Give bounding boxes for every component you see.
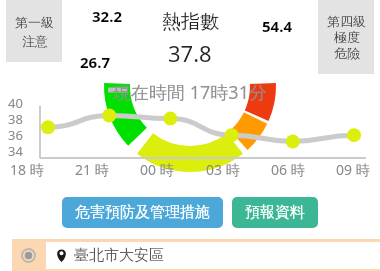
staticText: 第一級 xyxy=(15,14,54,30)
staticText: 26.7 xyxy=(80,52,110,72)
staticText: 00 時 xyxy=(140,160,174,179)
button[interactable]: 危害預防及管理措施 xyxy=(62,197,223,228)
staticText: 54.4 xyxy=(262,16,292,36)
staticText: 03 時 xyxy=(206,160,240,179)
staticText: 32.2 xyxy=(92,6,122,26)
staticText: 臺北市大安區 xyxy=(74,246,164,265)
staticText: 現在時間 17時31分 xyxy=(0,80,380,105)
staticText: 危險 xyxy=(334,45,360,61)
staticText: 38 xyxy=(8,110,23,126)
button[interactable]: 預報資料 xyxy=(232,197,318,228)
staticText: 極度 xyxy=(334,29,360,45)
staticText: 09 時 xyxy=(336,160,370,179)
staticText: 注意 xyxy=(22,33,48,49)
staticText: 熱指數 xyxy=(162,10,219,34)
staticText: 34 xyxy=(8,142,23,158)
staticText: 37.8 xyxy=(168,38,212,68)
staticText: 危害預防及管理措施 xyxy=(75,203,210,222)
staticText: 06 時 xyxy=(271,160,305,179)
staticText: 18 時 xyxy=(10,160,44,179)
other: Location xyxy=(55,249,68,262)
button[interactable]: Selected location xyxy=(12,239,380,271)
staticText: 第四級 xyxy=(327,13,366,29)
button[interactable]: 第四級 xyxy=(318,0,374,74)
button[interactable]: 第一級 xyxy=(6,0,62,62)
staticText: 預報資料 xyxy=(245,203,305,222)
staticText: 40 xyxy=(8,94,23,110)
staticText: 36 xyxy=(8,126,23,142)
staticText: 21 時 xyxy=(75,160,109,179)
other: Selected location xyxy=(21,248,36,263)
